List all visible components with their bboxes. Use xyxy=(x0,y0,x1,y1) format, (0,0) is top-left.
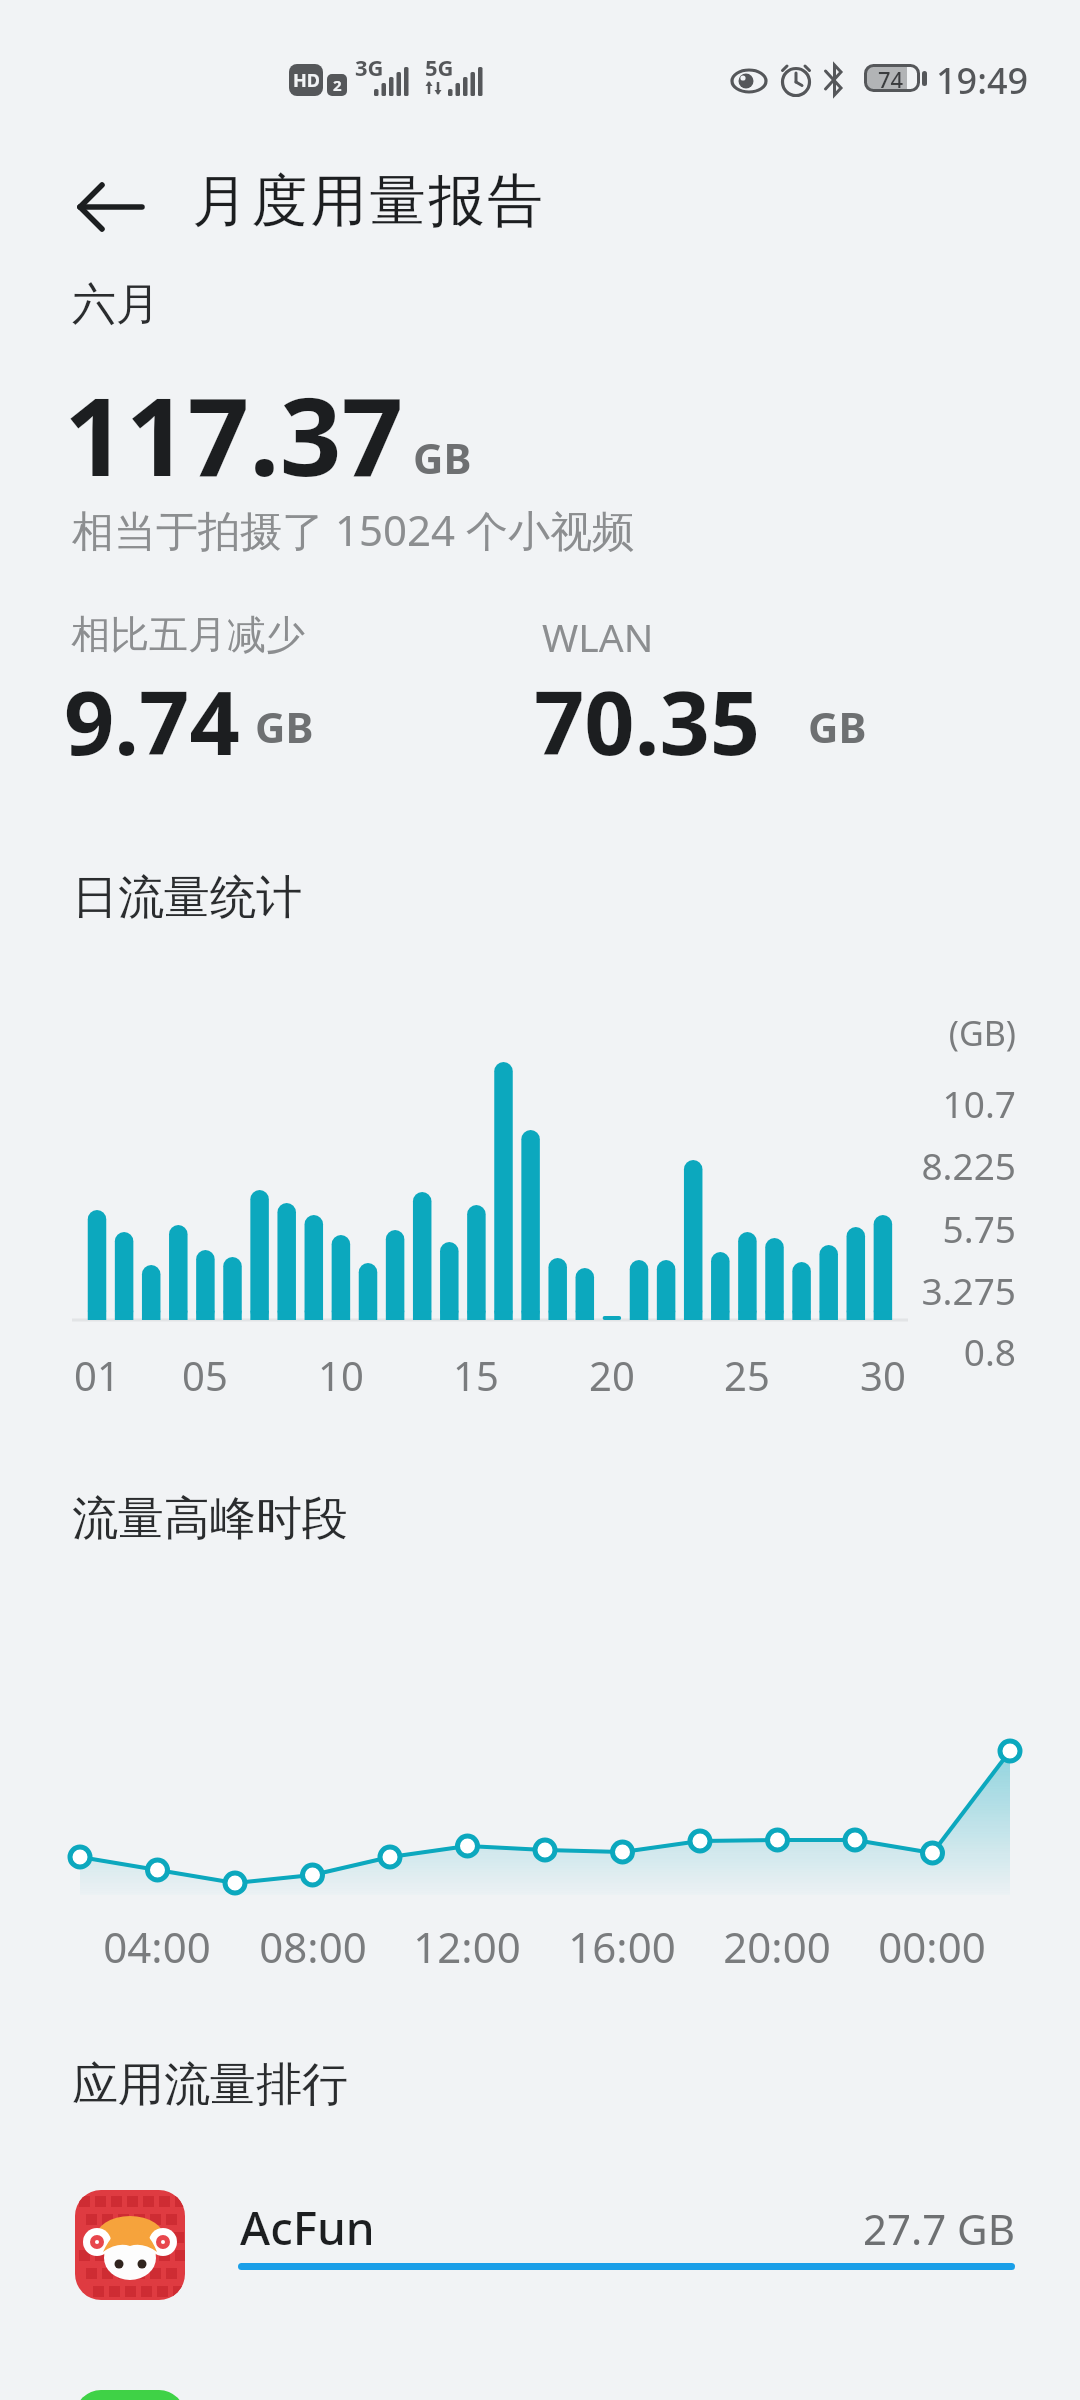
staticText: 08:00 xyxy=(233,1918,393,1975)
staticText: 5G xyxy=(425,52,454,82)
staticText: 117.37 xyxy=(64,361,404,508)
staticText: (GB) xyxy=(830,1010,1016,1056)
staticText: 01 xyxy=(47,1348,147,1402)
staticText: 六月 xyxy=(72,277,160,332)
staticText: 应用流量排行 xyxy=(72,2056,348,2114)
button[interactable] xyxy=(60,168,160,248)
staticText: 27.7 GB xyxy=(700,2200,1015,2257)
staticText: 日流量统计 xyxy=(72,869,302,927)
staticText: 相比五月减少 xyxy=(71,610,305,659)
staticText: 流量高峰时段 xyxy=(72,1490,348,1548)
staticText: 3G xyxy=(355,52,384,82)
staticText: 74 xyxy=(878,64,904,92)
staticText: 月度用量报告 xyxy=(191,166,545,237)
staticText: 5.75 xyxy=(830,1203,1016,1253)
staticText: AcFun xyxy=(240,2196,375,2259)
staticText: 05 xyxy=(155,1348,255,1402)
staticText: 25 xyxy=(697,1348,797,1402)
staticText: 19:49 xyxy=(936,56,1029,105)
staticText: 3.275 xyxy=(830,1265,1016,1315)
staticText: GB xyxy=(808,698,867,755)
button[interactable] xyxy=(75,2390,185,2400)
staticText: 00:00 xyxy=(852,1918,1012,1975)
staticText: 15 xyxy=(426,1348,526,1402)
staticText: 8.225 xyxy=(830,1140,1016,1190)
staticText: 20:00 xyxy=(697,1918,857,1975)
staticText: 9.74 xyxy=(64,661,240,781)
button[interactable] xyxy=(60,2175,1030,2315)
staticText: 70.35 xyxy=(534,661,761,781)
staticText: 2 xyxy=(333,75,342,95)
staticText: WLAN xyxy=(542,610,654,663)
staticText: 04:00 xyxy=(77,1918,237,1975)
staticText: 16:00 xyxy=(542,1918,702,1975)
staticText: GB xyxy=(413,429,472,486)
staticText: 12:00 xyxy=(387,1918,547,1975)
staticText: HD xyxy=(293,68,320,93)
staticText: 20 xyxy=(562,1348,662,1402)
staticText: 10.7 xyxy=(830,1078,1016,1128)
staticText: GB xyxy=(255,698,314,755)
staticText: 相当于拍摄了 15024 个小视频 xyxy=(72,501,634,558)
staticText: 30 xyxy=(833,1348,933,1402)
staticText: 0.8 xyxy=(830,1326,1016,1376)
staticText: 10 xyxy=(291,1348,391,1402)
